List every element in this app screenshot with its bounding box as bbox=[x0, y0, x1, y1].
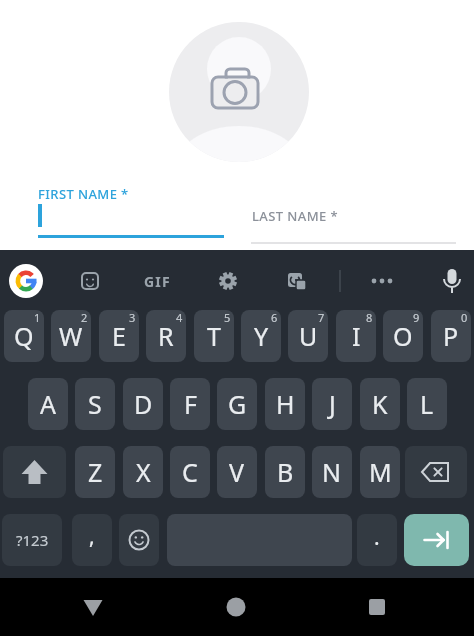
button[interactable]: Z bbox=[75, 446, 115, 498]
button[interactable] bbox=[436, 265, 468, 297]
staticText: P bbox=[443, 319, 459, 353]
button[interactable]: A bbox=[28, 378, 68, 430]
staticText: V bbox=[229, 455, 245, 489]
button[interactable]: V bbox=[217, 446, 257, 498]
button[interactable]: W bbox=[51, 310, 91, 362]
staticText: 4 bbox=[176, 310, 183, 325]
button[interactable]: Y bbox=[241, 310, 281, 362]
staticText: Z bbox=[88, 455, 103, 489]
button[interactable]: D bbox=[123, 378, 163, 430]
button[interactable]: Q bbox=[4, 310, 44, 362]
staticText: 6 bbox=[271, 310, 278, 325]
staticText: W bbox=[59, 319, 83, 353]
button[interactable]: E bbox=[99, 310, 139, 362]
staticText: D bbox=[134, 387, 153, 421]
staticText: J bbox=[329, 387, 336, 421]
button[interactable] bbox=[404, 514, 469, 566]
button[interactable]: U bbox=[288, 310, 328, 362]
staticText: O bbox=[393, 319, 413, 353]
button[interactable]: G bbox=[217, 378, 257, 430]
staticText: 7 bbox=[318, 310, 325, 325]
staticText: L bbox=[420, 387, 434, 421]
staticText: F bbox=[184, 387, 197, 421]
staticText: 3 bbox=[129, 310, 136, 325]
button[interactable]: C bbox=[170, 446, 210, 498]
button[interactable] bbox=[281, 265, 313, 297]
staticText: 5 bbox=[224, 310, 231, 325]
button[interactable]: J bbox=[312, 378, 352, 430]
button[interactable] bbox=[74, 265, 106, 297]
staticText: X bbox=[136, 455, 151, 489]
staticText: 8 bbox=[366, 310, 373, 325]
button[interactable]: T bbox=[194, 310, 234, 362]
button[interactable] bbox=[212, 265, 244, 297]
staticText: 1 bbox=[34, 310, 41, 325]
staticText: E bbox=[112, 319, 126, 353]
staticText: LAST NAME * bbox=[252, 207, 338, 225]
staticText: R bbox=[158, 319, 174, 353]
button[interactable]: ?123 bbox=[2, 514, 62, 566]
staticText: T bbox=[207, 319, 221, 353]
button[interactable]: P bbox=[431, 310, 471, 362]
staticText: GIF bbox=[144, 272, 171, 291]
staticText: K bbox=[372, 387, 388, 421]
staticText: FIRST NAME * bbox=[38, 185, 129, 203]
button[interactable]: R bbox=[146, 310, 186, 362]
staticText: B bbox=[277, 455, 294, 489]
staticText: 2 bbox=[81, 310, 88, 325]
button[interactable]: , bbox=[72, 514, 112, 566]
button[interactable] bbox=[169, 22, 309, 162]
button[interactable]: . bbox=[357, 514, 397, 566]
button[interactable] bbox=[405, 446, 467, 498]
button[interactable]: K bbox=[360, 378, 400, 430]
button[interactable] bbox=[366, 265, 398, 297]
button[interactable]: H bbox=[265, 378, 305, 430]
button[interactable]: L bbox=[407, 378, 447, 430]
staticText: Y bbox=[254, 319, 269, 353]
button[interactable]: B bbox=[265, 446, 305, 498]
button[interactable]: GIF bbox=[140, 265, 174, 297]
button[interactable]: S bbox=[75, 378, 115, 430]
staticText: N bbox=[322, 455, 342, 489]
staticText: H bbox=[276, 387, 295, 421]
staticText: 9 bbox=[413, 310, 420, 325]
button[interactable]: O bbox=[383, 310, 423, 362]
button[interactable]: F bbox=[170, 378, 210, 430]
button[interactable]: M bbox=[360, 446, 400, 498]
button[interactable] bbox=[3, 446, 66, 498]
staticText: A bbox=[40, 387, 56, 421]
staticText: . bbox=[374, 523, 380, 552]
button[interactable]: X bbox=[123, 446, 163, 498]
button[interactable] bbox=[119, 514, 159, 566]
staticText: U bbox=[299, 319, 318, 353]
button[interactable] bbox=[73, 587, 113, 627]
staticText: I bbox=[352, 319, 361, 353]
staticText: 0 bbox=[461, 310, 468, 325]
staticText: G bbox=[228, 387, 247, 421]
staticText: , bbox=[89, 522, 95, 551]
staticText: Q bbox=[14, 319, 34, 353]
staticText: S bbox=[88, 387, 102, 421]
button[interactable] bbox=[6, 261, 46, 301]
button[interactable] bbox=[216, 587, 256, 627]
staticText: ?123 bbox=[16, 530, 49, 550]
button[interactable]: I bbox=[336, 310, 376, 362]
button[interactable]: N bbox=[312, 446, 352, 498]
staticText: M bbox=[369, 455, 392, 489]
staticText: C bbox=[182, 455, 198, 489]
button[interactable] bbox=[357, 587, 397, 627]
